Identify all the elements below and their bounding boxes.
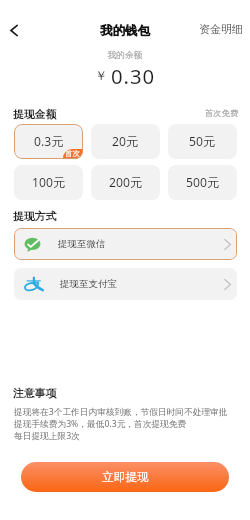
button[interactable]: 0.3元	[14, 124, 83, 159]
staticText: ￥	[95, 68, 108, 84]
staticText: 提现方式	[13, 210, 57, 224]
button[interactable]: 500元	[168, 165, 237, 200]
staticText: 资金明细	[199, 22, 243, 36]
staticText: 我的余额	[0, 50, 250, 61]
staticText: 50元	[189, 133, 216, 150]
staticText: 提现将在3个工作日内审核到账，节假日时间不处理审批	[14, 406, 228, 418]
staticText: 首次免费	[205, 108, 239, 118]
staticText: 100元	[32, 174, 66, 191]
button[interactable]: 200元	[91, 165, 160, 200]
button[interactable]: 提现至微信	[14, 228, 237, 260]
staticText: 提现手续费为3%，最低0.3元，首次提现免费	[14, 418, 187, 430]
staticText: 我的钱包	[0, 23, 250, 39]
staticText: 立即提现	[102, 470, 149, 485]
staticText: 500元	[186, 174, 220, 191]
staticText: 提现金额	[13, 108, 57, 122]
button[interactable]: 100元	[14, 165, 83, 200]
staticText: 0.3元	[34, 133, 64, 150]
button[interactable]: 立即提现	[21, 462, 229, 492]
staticText: 20元	[112, 133, 139, 150]
staticText: 200元	[109, 174, 143, 191]
staticText: 首次	[65, 149, 81, 159]
staticText: 0.30	[111, 62, 156, 90]
staticText: 注意事项	[13, 387, 57, 401]
staticText: 提现至微信	[58, 238, 106, 250]
button[interactable]: Back	[0, 16, 28, 44]
button[interactable]: 20元	[91, 124, 160, 159]
button[interactable]: 50元	[168, 124, 237, 159]
staticText: 提现至支付宝	[60, 278, 117, 290]
staticText: 每日提现上限3次	[14, 430, 80, 442]
button[interactable]: 资金明细	[193, 16, 250, 42]
button[interactable]: 提现至支付宝	[14, 268, 237, 300]
